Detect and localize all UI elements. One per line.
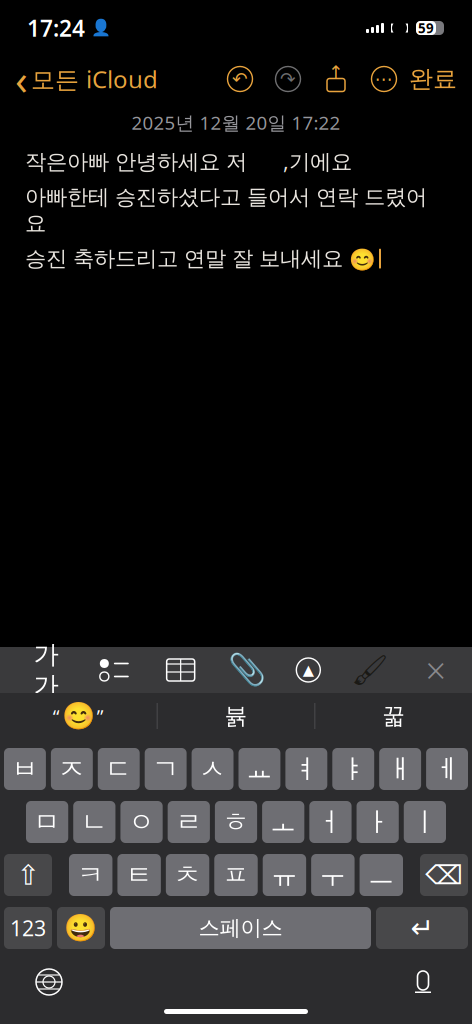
button[interactable]: Attachment bbox=[225, 648, 269, 692]
button[interactable]: 꿃 bbox=[315, 693, 472, 739]
staticText: ㅑ bbox=[340, 753, 367, 785]
staticText: ㅠ bbox=[271, 859, 298, 891]
staticText: ㅕ bbox=[293, 753, 320, 785]
button[interactable]: ㅡ bbox=[360, 854, 403, 896]
staticText: ▲ bbox=[303, 662, 314, 678]
button[interactable]: Table bbox=[159, 648, 203, 692]
staticText: 📎 bbox=[228, 652, 266, 687]
staticText: 꿃 bbox=[382, 702, 405, 730]
button[interactable]: ㅔ bbox=[426, 748, 468, 790]
staticText: ㅁ bbox=[34, 806, 61, 838]
button[interactable]: ㄱ bbox=[145, 748, 187, 790]
button[interactable]: ㅜ bbox=[311, 854, 354, 896]
button[interactable]: Shift bbox=[4, 854, 52, 896]
button[interactable]: Draw bbox=[348, 648, 392, 692]
staticText: ㅡ bbox=[368, 859, 395, 891]
staticText: 뷹 bbox=[224, 702, 247, 730]
staticText: 👤 bbox=[91, 19, 111, 37]
button[interactable]: Delete bbox=[420, 854, 468, 896]
staticText: ㅜ bbox=[319, 859, 346, 891]
button[interactable]: ㅌ bbox=[117, 854, 161, 896]
button[interactable]: ㅈ bbox=[51, 748, 93, 790]
staticText: 아빠한테 승진하셨다고 들어서 연락 드렸어요 bbox=[25, 184, 427, 236]
staticText: ㄱ bbox=[152, 753, 179, 785]
staticText: ㅗ bbox=[270, 806, 297, 838]
staticText: ㅅ bbox=[199, 753, 226, 785]
button[interactable]: ㅓ bbox=[309, 801, 351, 843]
button[interactable]: 완료 bbox=[409, 59, 457, 99]
button[interactable]: Undo bbox=[223, 62, 257, 96]
staticText: ⋯ bbox=[374, 68, 393, 90]
staticText: ㅂ bbox=[11, 753, 38, 785]
staticText: ㅍ bbox=[222, 859, 249, 891]
staticText: ㄴ bbox=[81, 806, 108, 838]
staticText: ㅛ bbox=[246, 753, 273, 785]
button[interactable]: Redo bbox=[271, 62, 305, 96]
staticText: ” bbox=[97, 704, 104, 728]
button[interactable]: ㅛ bbox=[238, 748, 280, 790]
staticText: ⌫ bbox=[425, 860, 463, 890]
staticText: ㅣ bbox=[411, 806, 438, 838]
staticText: ↶ bbox=[232, 68, 248, 90]
button[interactable]: “ bbox=[0, 693, 157, 739]
staticText: 🖌 bbox=[351, 653, 388, 687]
staticText: ㅏ bbox=[364, 806, 391, 838]
staticText: ‹ bbox=[15, 52, 28, 106]
button[interactable]: ㅣ bbox=[404, 801, 446, 843]
button[interactable]: Return bbox=[376, 907, 468, 949]
staticText: 😊 bbox=[62, 701, 95, 731]
button[interactable]: ㅅ bbox=[192, 748, 233, 790]
staticText: ↵ bbox=[410, 912, 433, 944]
staticText: 완료 bbox=[409, 64, 457, 94]
button[interactable]: Markup bbox=[291, 653, 325, 687]
staticText: ㅎ bbox=[222, 806, 249, 838]
button[interactable]: ㅗ bbox=[262, 801, 304, 843]
button[interactable]: Numbers bbox=[4, 907, 52, 949]
staticText: 59 bbox=[418, 19, 434, 37]
staticText: 스페이스 bbox=[198, 915, 282, 941]
button[interactable]: Dictation bbox=[401, 960, 445, 1004]
staticText: 모든 iCloud bbox=[31, 63, 158, 95]
button[interactable]: ㄴ bbox=[73, 801, 115, 843]
button[interactable]: ㅐ bbox=[379, 748, 421, 790]
button[interactable]: ㅊ bbox=[166, 854, 209, 896]
button[interactable]: ㅑ bbox=[332, 748, 374, 790]
button[interactable]: ㅋ bbox=[69, 854, 112, 896]
staticText: ㅊ bbox=[174, 859, 201, 891]
button[interactable]: ㄹ bbox=[168, 801, 210, 843]
staticText: ㄷ bbox=[105, 753, 132, 785]
staticText: ㅇ bbox=[128, 806, 155, 838]
button[interactable]: Emoji bbox=[57, 907, 105, 949]
staticText: 17:24 bbox=[27, 13, 85, 43]
button[interactable]: 뷹 bbox=[158, 693, 314, 739]
button[interactable]: ㄷ bbox=[98, 748, 140, 790]
staticText: 😀 bbox=[64, 913, 97, 943]
staticText: ㅓ bbox=[317, 806, 344, 838]
staticText: ㅈ bbox=[58, 753, 85, 785]
staticText: ㅔ bbox=[434, 753, 461, 785]
staticText: × bbox=[425, 646, 446, 694]
button[interactable]: ㅏ bbox=[357, 801, 399, 843]
button[interactable]: ㅎ bbox=[215, 801, 257, 843]
staticText: ⇧ bbox=[16, 859, 39, 891]
button[interactable]: ㅕ bbox=[285, 748, 327, 790]
button[interactable]: More bbox=[367, 62, 401, 96]
button[interactable]: ㅇ bbox=[120, 801, 163, 843]
button[interactable]: ㅁ bbox=[26, 801, 68, 843]
button[interactable]: Checklist bbox=[92, 648, 136, 692]
staticText: ㄹ bbox=[175, 806, 202, 838]
button[interactable]: Hide keyboard bbox=[414, 648, 458, 692]
staticText: ↑ bbox=[328, 62, 344, 83]
staticText: 2025년 12월 20일 17:22 bbox=[131, 110, 340, 135]
staticText: ㅋ bbox=[77, 859, 104, 891]
staticText: 작은아빠 안녕하세요 저 ,기에요 bbox=[25, 147, 352, 175]
button[interactable]: ㅍ bbox=[214, 854, 258, 896]
button[interactable]: ㅠ bbox=[263, 854, 306, 896]
button[interactable]: Share bbox=[319, 62, 353, 96]
button[interactable]: ‹ bbox=[15, 47, 158, 111]
button[interactable]: ㅂ bbox=[4, 748, 46, 790]
staticText: 가가 bbox=[33, 639, 58, 701]
button[interactable]: Next keyboard bbox=[27, 960, 71, 1004]
button[interactable]: Format bbox=[22, 648, 70, 692]
button[interactable]: Space bbox=[110, 907, 371, 949]
